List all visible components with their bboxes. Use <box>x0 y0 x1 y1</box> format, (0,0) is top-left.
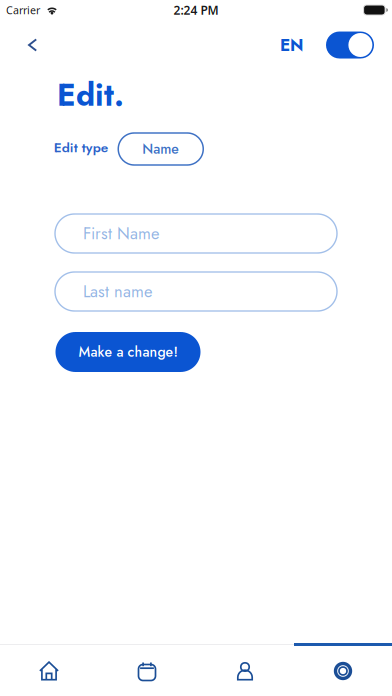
button[interactable]: Language toggle <box>306 27 392 62</box>
button[interactable]: Home <box>0 646 98 696</box>
staticText: Carrier <box>6 3 40 17</box>
button[interactable]: Name <box>118 133 203 165</box>
staticText: 2:24 PM <box>173 2 218 18</box>
staticText: Last name <box>83 280 152 303</box>
button[interactable]: Calendar <box>98 646 196 696</box>
staticText: Make a change! <box>78 342 177 362</box>
staticText: Name <box>142 139 179 159</box>
button[interactable]: Profile <box>196 646 294 696</box>
button[interactable]: EN <box>277 26 306 64</box>
staticText: Edit type <box>54 138 108 157</box>
button[interactable]: Settings <box>294 646 392 696</box>
staticText: First Name <box>83 222 159 245</box>
staticText: Edit. <box>57 73 124 117</box>
button[interactable]: Make a change! <box>55 332 200 372</box>
button[interactable]: Back <box>0 31 53 59</box>
staticText: EN <box>280 33 303 57</box>
